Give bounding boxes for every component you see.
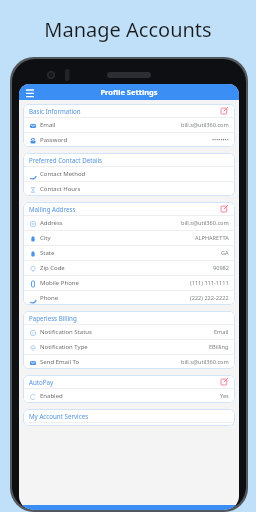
staticText: State <box>40 249 55 257</box>
staticText: City <box>40 234 51 242</box>
button[interactable]: Enabled <box>23 389 235 403</box>
button[interactable]: Menu <box>19 84 239 100</box>
staticText: bill.s@util360.com <box>181 219 229 227</box>
button[interactable]: Address <box>23 216 235 230</box>
button[interactable]: State <box>23 246 235 260</box>
staticText: Enabled <box>40 392 63 400</box>
staticText: bill.s@util360.com <box>181 121 229 129</box>
staticText: (222) 222-2222 <box>190 294 229 302</box>
button[interactable]: Notification Status <box>23 325 235 339</box>
button[interactable]: Edit Basic Information <box>220 106 229 115</box>
button[interactable]: Edit Mailing Address <box>220 204 229 213</box>
staticText: GA <box>221 249 229 257</box>
button[interactable]: AutoPay <box>23 375 235 403</box>
button[interactable]: Send Email To <box>23 355 235 369</box>
staticText: Email <box>214 328 229 336</box>
staticText: Contact Method <box>40 170 86 178</box>
button[interactable]: Basic Information <box>23 104 235 147</box>
button[interactable]: Contact Method <box>23 167 235 181</box>
button[interactable]: Mobile Phone <box>23 276 235 290</box>
button[interactable]: Contact Hours <box>23 182 235 196</box>
staticText: bill.s@util360.com <box>181 358 229 366</box>
staticText: Email <box>40 121 56 129</box>
staticText: Zip Code <box>40 264 65 272</box>
staticText: Mobile Phone <box>40 279 79 287</box>
staticText: Manage Accounts <box>0 16 256 43</box>
staticText: My Account Services <box>29 412 229 420</box>
staticText: Password <box>40 136 68 144</box>
button[interactable]: Password <box>23 133 235 147</box>
button[interactable]: My Account Services <box>23 409 235 426</box>
staticText: Preferred Contact Details <box>29 156 229 164</box>
staticText: EBilling <box>209 343 229 351</box>
staticText: Paperless Billing <box>29 314 229 322</box>
staticText: Yes <box>220 392 229 400</box>
button[interactable]: Notification Type <box>23 340 235 354</box>
staticText: ALPHARETTA <box>195 234 229 242</box>
staticText: Notification Status <box>40 328 92 336</box>
staticText: Mailing Address <box>29 205 220 213</box>
button[interactable]: Menu <box>24 87 35 98</box>
staticText: Address <box>40 219 63 227</box>
staticText: •••••••• <box>212 136 229 144</box>
button[interactable]: City <box>23 231 235 245</box>
button[interactable]: Email <box>23 118 235 132</box>
staticText: (111) 111-1111 <box>190 279 229 287</box>
staticText: Notification Type <box>40 343 88 351</box>
staticText: Contact Hours <box>40 185 81 193</box>
staticText: 90982 <box>213 264 229 272</box>
button[interactable]: Phone <box>23 291 235 305</box>
button[interactable]: Edit AutoPay <box>220 377 229 386</box>
staticText: Profile Settings <box>35 87 223 97</box>
button[interactable]: Zip Code <box>23 261 235 275</box>
staticText: Send Email To <box>40 358 80 366</box>
staticText: AutoPay <box>29 378 220 386</box>
button[interactable]: Mailing Address <box>23 202 235 305</box>
staticText: Basic Information <box>29 107 220 115</box>
staticText: Phone <box>40 294 59 302</box>
button[interactable]: Paperless Billing <box>23 311 235 369</box>
button[interactable]: Preferred Contact Details <box>23 153 235 196</box>
